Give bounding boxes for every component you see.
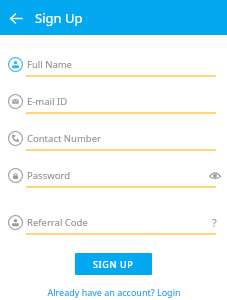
button[interactable]: Referral code help: [206, 214, 223, 231]
staticText: Full Name: [27, 58, 72, 71]
staticText: SIGN UP: [93, 258, 134, 270]
button[interactable]: Full Name: [0, 56, 227, 77]
button[interactable]: Back: [5, 7, 27, 29]
button[interactable]: E-mail ID: [0, 93, 227, 114]
staticText: Already have an account? Login: [47, 286, 181, 298]
button[interactable]: Contact Number: [0, 130, 227, 151]
button[interactable]: Show password: [206, 167, 223, 184]
button[interactable]: Referral Code: [0, 214, 227, 235]
button[interactable]: Already have an account? Login: [41, 284, 187, 300]
staticText: Contact Number: [27, 132, 101, 145]
staticText: Sign Up: [35, 9, 83, 27]
staticText: ?: [212, 215, 217, 230]
staticText: Referral Code: [27, 216, 88, 229]
staticText: E-mail ID: [27, 95, 68, 108]
button[interactable]: Password: [0, 167, 227, 188]
button[interactable]: SIGN UP: [75, 253, 152, 275]
staticText: Password: [27, 169, 70, 182]
